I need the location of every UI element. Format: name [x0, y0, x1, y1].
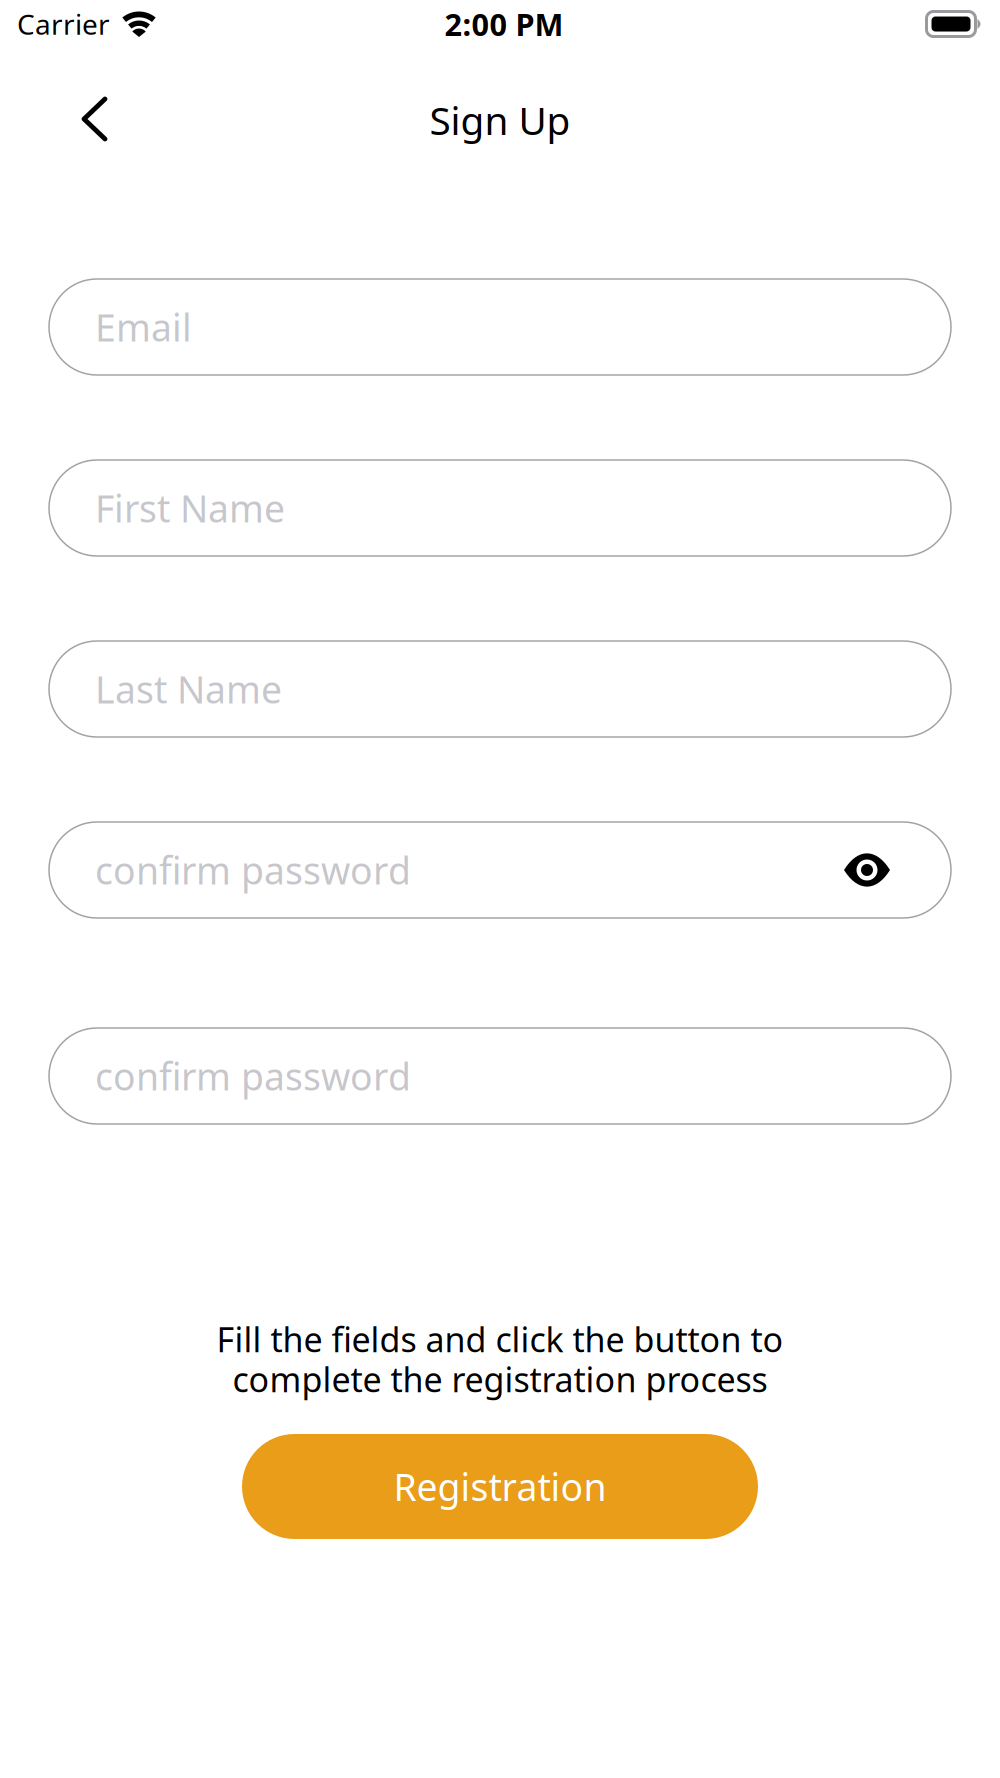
- button[interactable]: Email: [49, 279, 951, 375]
- staticText: 2:00 PM: [444, 3, 563, 45]
- button[interactable]: Back: [0, 74, 145, 166]
- button[interactable]: Show password: [835, 838, 899, 902]
- button[interactable]: First Name: [49, 460, 951, 556]
- button[interactable]: confirm password: [49, 1028, 951, 1124]
- staticText: Fill the fields and click the button to: [216, 1316, 783, 1362]
- staticText: Carrier: [17, 5, 110, 43]
- staticText: Sign Up: [429, 94, 570, 146]
- staticText: Registration: [393, 1461, 606, 1512]
- staticText: complete the registration process: [232, 1356, 767, 1402]
- staticText: confirm password: [95, 845, 411, 895]
- staticText: First Name: [95, 483, 285, 533]
- button[interactable]: Registration: [242, 1434, 758, 1539]
- button[interactable]: confirm password: [49, 822, 951, 918]
- button[interactable]: Last Name: [49, 641, 951, 737]
- staticText: Last Name: [95, 664, 282, 714]
- staticText: Email: [95, 302, 192, 352]
- staticText: confirm password: [95, 1051, 411, 1101]
